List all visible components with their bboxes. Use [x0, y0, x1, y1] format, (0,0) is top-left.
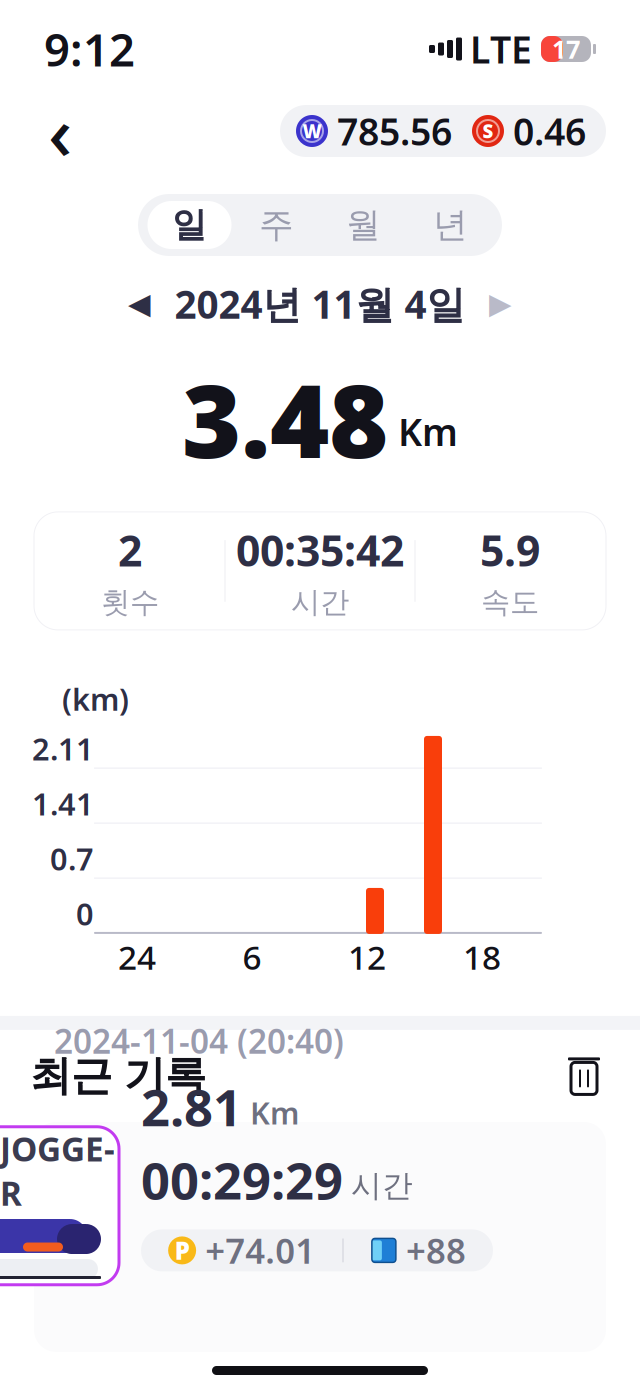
staticText: 24: [118, 935, 156, 979]
staticText: 속도: [481, 584, 539, 620]
staticText: 일: [172, 204, 207, 246]
staticText: 5.9: [480, 522, 540, 578]
staticText: 2.81: [141, 1073, 242, 1140]
button[interactable]: Back: [28, 99, 92, 163]
staticText: 00:35:42: [236, 522, 404, 578]
staticText: Km: [250, 1092, 299, 1133]
staticText: W: [302, 119, 321, 143]
staticText: 00:29:29: [141, 1146, 343, 1213]
staticText: 2024년 11월 4일: [174, 278, 465, 329]
staticText: +74.01: [205, 1227, 315, 1273]
button[interactable]: 일: [146, 194, 233, 256]
staticText: +88: [406, 1227, 466, 1273]
staticText: Km: [398, 407, 458, 456]
button[interactable]: 월: [320, 194, 407, 256]
staticText: 시간: [291, 584, 349, 620]
staticText: 785.56: [337, 106, 452, 156]
staticText: 월: [346, 204, 381, 246]
staticText: 시간: [351, 1167, 413, 1205]
staticText: ◀: [128, 287, 151, 320]
staticText: 3.48: [182, 351, 388, 486]
staticText: 17: [552, 32, 580, 66]
staticText: 최근 기록: [30, 1050, 206, 1101]
staticText: 0.46: [513, 106, 586, 156]
staticText: JOGGER: [0, 1126, 115, 1215]
staticText: S: [482, 119, 493, 143]
staticText: P: [175, 1234, 190, 1266]
button[interactable]: W: [280, 105, 606, 157]
staticText: 2: [118, 522, 142, 578]
staticText: ‹: [48, 81, 72, 181]
button[interactable]: Delete records: [556, 1048, 612, 1104]
staticText: ▶: [489, 287, 512, 320]
staticText: 년: [433, 204, 468, 246]
button[interactable]: 2024-11-04 (20:40): [34, 1122, 606, 1352]
staticText: 횟수: [101, 584, 159, 620]
staticText: 18: [463, 935, 501, 979]
staticText: (km): [62, 679, 129, 719]
button[interactable]: 년: [407, 194, 494, 256]
staticText: 0.7: [50, 838, 94, 879]
button[interactable]: 주: [233, 194, 320, 256]
staticText: 1.41: [32, 783, 94, 824]
staticText: 9:12: [44, 19, 135, 79]
staticText: 주: [259, 204, 294, 246]
staticText: 2.11: [32, 728, 94, 769]
staticText: LTE: [470, 24, 532, 74]
staticText: 2024-11-04 (20:40): [54, 1019, 344, 1063]
button[interactable]: Previous day: [116, 281, 162, 327]
staticText: 12: [348, 935, 386, 979]
staticText: 0: [76, 893, 94, 934]
button[interactable]: Next day: [477, 281, 523, 327]
staticText: 6: [242, 935, 261, 979]
